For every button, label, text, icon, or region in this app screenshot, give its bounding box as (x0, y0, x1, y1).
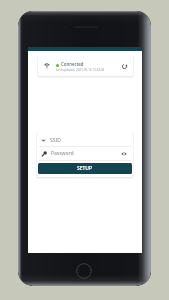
button[interactable]: SETUP (38, 163, 132, 174)
button[interactable]: Show password (119, 149, 129, 159)
staticText: Password (51, 150, 74, 157)
staticText: Connected (61, 61, 84, 67)
button[interactable]: Refresh (117, 59, 131, 73)
button[interactable]: SSID (37, 134, 133, 147)
staticText: SSID (50, 137, 61, 144)
button[interactable]: Connected (38, 56, 133, 76)
staticText: Last updated: 2021-05-16 12:53:36 (56, 68, 105, 72)
staticText: SETUP (77, 165, 93, 172)
